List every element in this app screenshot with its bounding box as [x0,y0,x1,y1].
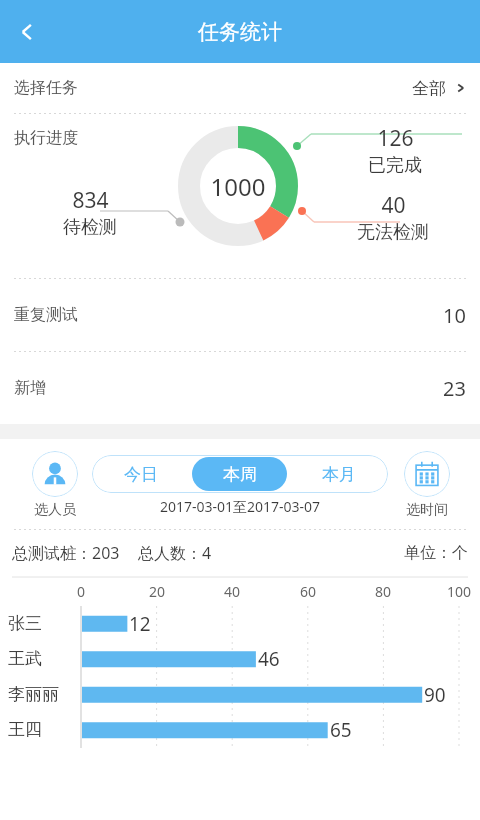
staticText: 总测试桩：203 [12,542,120,564]
button[interactable]: 本月 [291,457,386,491]
staticText: 100 [439,582,479,601]
staticText: 任务统计 [198,19,282,45]
staticText: 已完成 [368,154,422,177]
staticText: 本周 [223,464,257,485]
staticText: 选择任务 [14,78,78,98]
staticText: 40 [381,191,406,220]
staticText: 46 [258,646,280,672]
staticText: 60 [288,582,328,601]
staticText: 1000 [178,170,298,203]
staticText: 10 [443,302,466,329]
staticText: 2017-03-01至2017-03-07 [92,497,388,516]
button[interactable]: 今日 [94,457,188,491]
other: 选人员 [32,451,78,497]
staticText: 20 [137,582,177,601]
staticText: 80 [363,582,403,601]
staticText: 总人数：4 [138,542,212,564]
staticText: 新增 [14,378,46,398]
staticText: 0 [61,582,101,601]
staticText: 待检测 [63,216,117,239]
button[interactable]: 选人员 [24,451,86,519]
other: 选时间 [404,451,450,497]
staticText: 执行进度 [14,128,78,148]
button[interactable]: 新增 [0,352,480,424]
staticText: 无法检测 [357,221,429,244]
button[interactable]: 本周 [192,457,287,491]
staticText: 12 [129,611,151,637]
staticText: 23 [443,375,466,402]
staticText: 重复测试 [14,305,78,325]
staticText: 本月 [322,464,356,485]
button[interactable]: 选时间 [396,451,458,519]
staticText: 张三 [8,613,42,634]
staticText: 65 [330,717,352,743]
staticText: 126 [377,124,414,153]
staticText: 40 [212,582,252,601]
staticText: 选时间 [406,501,448,519]
button[interactable]: Back [0,4,56,60]
staticText: 90 [424,682,446,708]
staticText: 单位：个 [404,543,468,563]
button[interactable]: 重复测试 [0,279,480,351]
staticText: 王四 [8,719,42,740]
staticText: 王武 [8,648,42,669]
staticText: 李丽丽 [8,684,59,705]
staticText: 今日 [124,464,158,485]
staticText: 834 [72,186,109,215]
staticText: 全部 [412,78,446,99]
staticText: 选人员 [34,501,76,519]
button[interactable]: 选择任务 [0,63,480,113]
